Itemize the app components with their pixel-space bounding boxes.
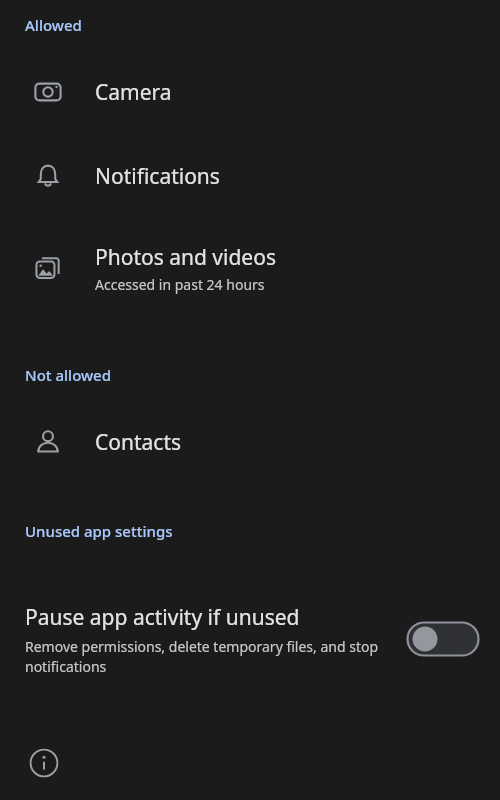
button[interactable]: Notifications bbox=[0, 146, 500, 206]
staticText: Pause app activity if unused bbox=[25, 603, 300, 632]
staticText: Camera bbox=[95, 78, 172, 107]
button[interactable]: Pause app activity if unused bbox=[0, 578, 500, 700]
staticText: Photos and videos bbox=[95, 243, 276, 272]
button[interactable]: More information bbox=[22, 741, 66, 785]
staticText: Notifications bbox=[95, 162, 220, 191]
staticText: Allowed bbox=[25, 15, 82, 35]
button[interactable]: Contacts bbox=[0, 412, 500, 472]
button[interactable]: Photos and videos bbox=[0, 234, 500, 302]
staticText: Unused app settings bbox=[25, 521, 173, 541]
button[interactable]: Pause app activity if unused toggle bbox=[406, 621, 480, 657]
staticText: Remove permissions, delete temporary fil… bbox=[25, 637, 392, 676]
button[interactable]: Camera bbox=[0, 62, 500, 122]
staticText: Accessed in past 24 hours bbox=[95, 275, 265, 294]
staticText: Contacts bbox=[95, 428, 182, 457]
staticText: Not allowed bbox=[25, 365, 112, 385]
